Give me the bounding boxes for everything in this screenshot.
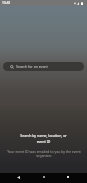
button[interactable]: Back [6, 172, 31, 182]
button[interactable]: Recent apps [55, 172, 80, 182]
staticText: Search by name, location, or event ID [20, 133, 67, 144]
staticText: Your event ID was emailed to you by the … [7, 149, 81, 158]
button[interactable]: Home [31, 172, 56, 182]
button[interactable]: Search for an event [3, 62, 84, 71]
staticText: 10:48 [2, 1, 10, 5]
staticText: Search for an event [16, 64, 48, 69]
